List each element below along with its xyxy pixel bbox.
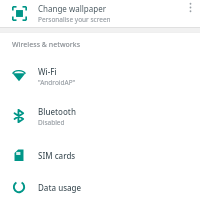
button[interactable]: Bluetooth xyxy=(0,96,200,136)
staticText: Data usage xyxy=(38,182,82,193)
button[interactable]: Data usage xyxy=(0,174,200,200)
button[interactable]: Change wallpaper xyxy=(0,0,200,27)
button[interactable]: Wi-Fi xyxy=(0,56,200,96)
staticText: Bluetooth xyxy=(38,106,76,117)
staticText: Wireless & networks xyxy=(12,40,81,50)
staticText: Personalise your screen xyxy=(38,15,111,24)
button[interactable]: SIM cards xyxy=(0,136,200,174)
staticText: Disabled xyxy=(38,118,65,127)
staticText: SIM cards xyxy=(38,150,76,161)
staticText: Change wallpaper xyxy=(38,3,106,14)
staticText: "AndroidAP" xyxy=(38,78,76,87)
button[interactable]: More options xyxy=(180,0,200,27)
staticText: Wi-Fi xyxy=(38,66,57,77)
